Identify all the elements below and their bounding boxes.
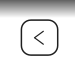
- button[interactable]: Back: [21, 20, 58, 55]
